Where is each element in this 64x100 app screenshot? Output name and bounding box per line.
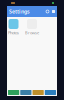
button[interactable]: More (52, 10, 55, 13)
button[interactable] (20, 90, 31, 95)
staticText: Settings (9, 8, 30, 15)
button[interactable] (32, 90, 44, 95)
button[interactable]: Search (46, 10, 49, 13)
staticText: Browse (25, 30, 39, 35)
staticText: Photos (8, 30, 19, 35)
